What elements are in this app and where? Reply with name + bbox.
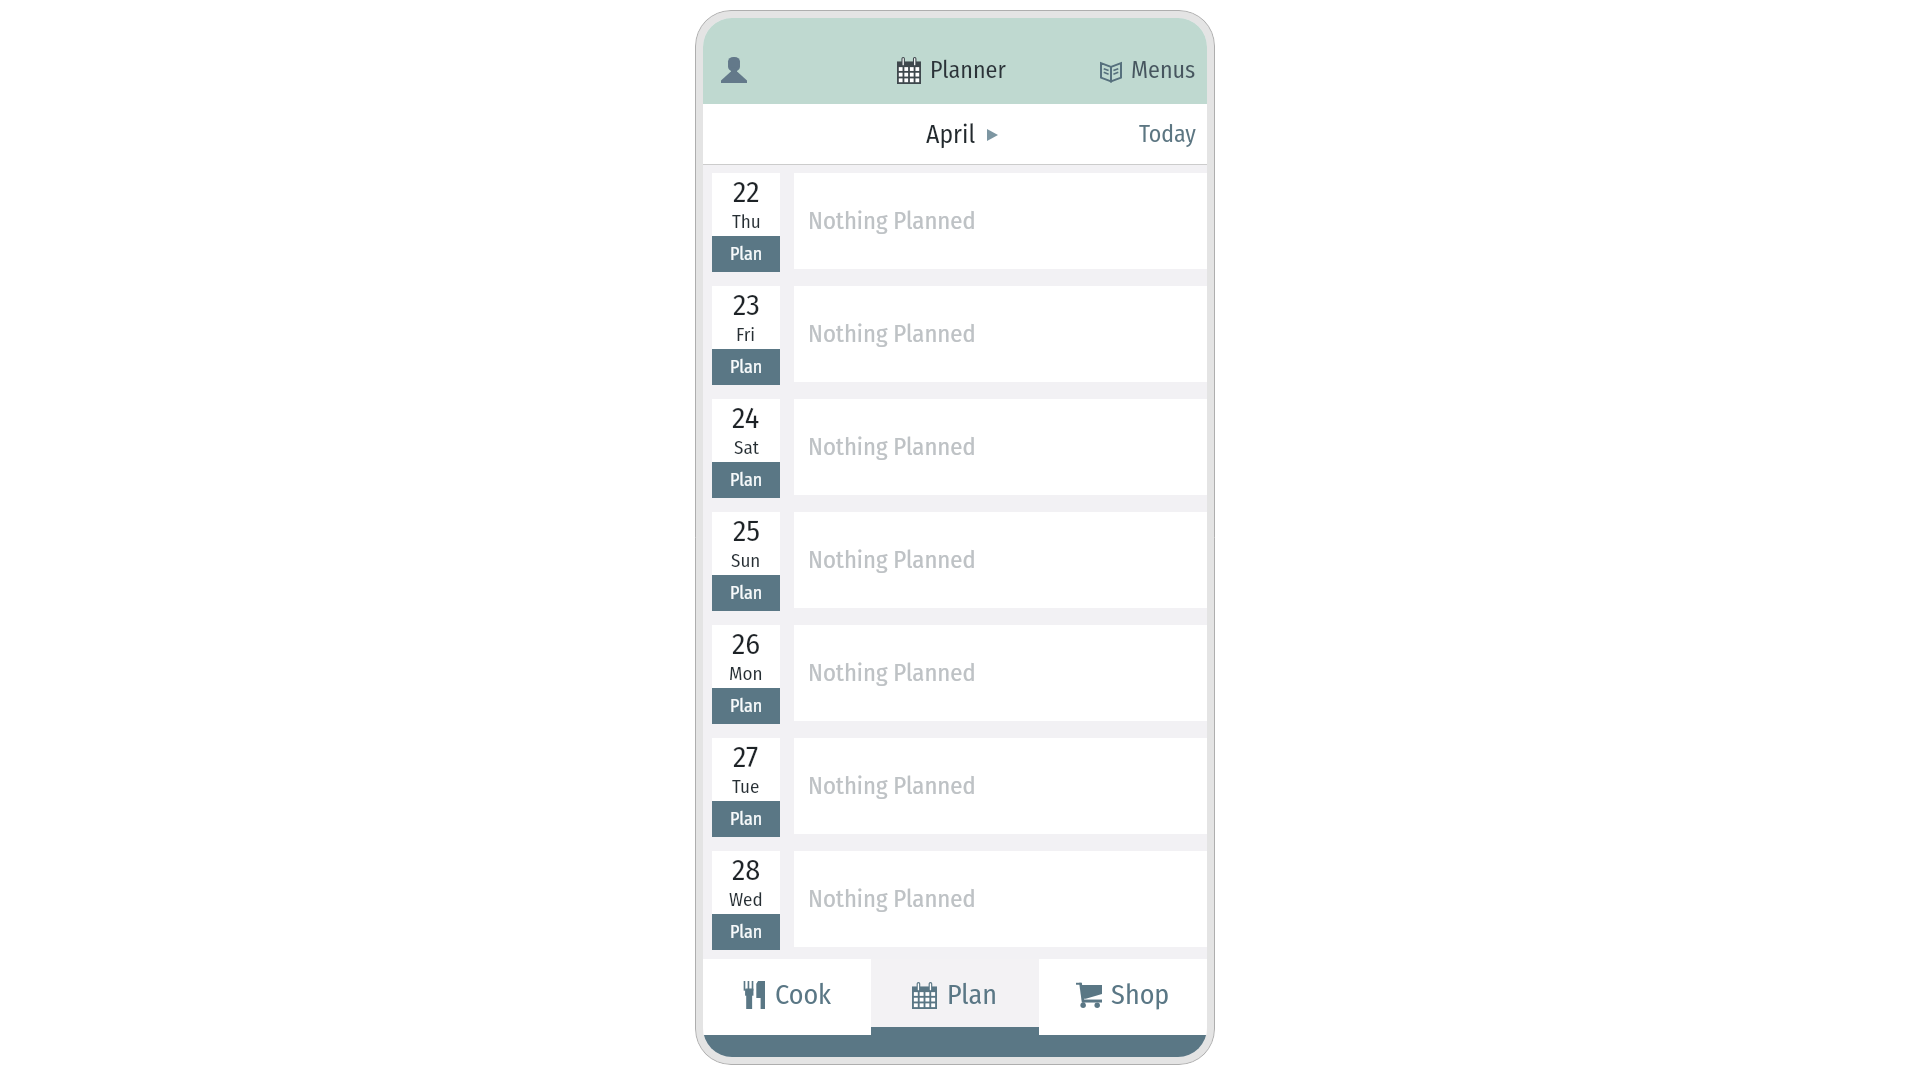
staticText: Nothing Planned [808,658,976,688]
staticText: Nothing Planned [808,206,976,236]
staticText: Today [1139,120,1196,149]
staticText: Fri [736,323,756,346]
staticText: Nothing Planned [808,319,976,349]
staticText: Nothing Planned [808,771,976,801]
button[interactable]: Nothing Planned [794,399,1207,495]
staticText: 26 [732,626,761,662]
button[interactable]: Plan [712,462,780,498]
button[interactable]: Plan [712,688,780,724]
staticText: Plan [730,695,763,717]
staticText: 27 [733,739,759,775]
button[interactable]: Nothing Planned [794,286,1207,382]
staticText: Thu [732,210,761,233]
button[interactable]: Nothing Planned [794,625,1207,721]
button[interactable]: Plan [712,801,780,837]
staticText: Plan [730,356,763,378]
button[interactable]: Cook [703,959,871,1027]
button[interactable]: Plan [871,959,1039,1027]
button[interactable]: Menus [1090,48,1207,93]
staticText: Mon [729,662,763,685]
staticText: Nothing Planned [808,545,976,575]
staticText: Cook [775,978,832,1012]
button[interactable]: Plan [712,236,780,272]
button[interactable]: Plan [712,349,780,385]
button[interactable]: Nothing Planned [794,173,1207,269]
staticText: 25 [733,513,760,549]
button[interactable]: Nothing Planned [794,738,1207,834]
staticText: Planner [930,56,1006,85]
button[interactable]: Account [703,36,765,104]
staticText: Sun [731,549,761,572]
button[interactable]: Today [1128,112,1207,157]
staticText: Plan [730,808,763,830]
staticText: Plan [730,243,763,265]
staticText: April [926,119,976,150]
staticText: Plan [730,582,763,604]
button[interactable]: Plan [712,575,780,611]
staticText: 22 [733,174,760,210]
staticText: Nothing Planned [808,884,976,914]
staticText: 23 [733,287,760,323]
button[interactable]: Plan [712,914,780,950]
staticText: Tue [732,775,760,798]
staticText: Nothing Planned [808,432,976,462]
button[interactable]: Planner [887,48,1016,93]
staticText: Shop [1111,978,1170,1012]
staticText: Plan [947,978,998,1012]
staticText: Plan [730,469,763,491]
staticText: Sat [734,436,759,459]
staticText: Menus [1131,56,1196,85]
button[interactable]: April [920,113,1004,156]
button[interactable]: Nothing Planned [794,851,1207,947]
staticText: 28 [732,852,761,888]
staticText: Wed [729,888,763,911]
staticText: Plan [730,921,763,943]
staticText: 24 [732,400,760,436]
button[interactable]: Nothing Planned [794,512,1207,608]
button[interactable]: Shop [1039,959,1207,1027]
